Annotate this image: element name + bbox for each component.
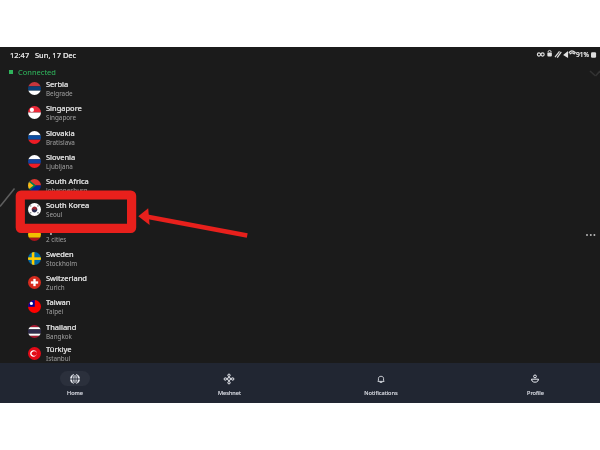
staticText: Singapore bbox=[46, 113, 77, 122]
staticText: Spain bbox=[46, 225, 66, 235]
staticText: 12:47 bbox=[10, 50, 30, 60]
button[interactable]: South Africa bbox=[0, 173, 600, 197]
staticText: Sun, 17 Dec bbox=[35, 50, 77, 60]
staticText: Zurich bbox=[46, 283, 65, 292]
staticText: Taiwan bbox=[46, 297, 71, 307]
button[interactable]: Notifications bbox=[341, 363, 421, 403]
staticText: Ljubljana bbox=[46, 162, 73, 171]
staticText: Sweden bbox=[46, 249, 74, 259]
staticText: Johannesburg bbox=[46, 186, 88, 195]
staticText: Seoul bbox=[46, 210, 63, 219]
staticText: 2 cities bbox=[46, 235, 67, 244]
button[interactable]: Spain bbox=[0, 222, 600, 246]
button[interactable]: South Korea bbox=[0, 197, 600, 222]
button[interactable]: Sweden bbox=[0, 246, 600, 270]
staticText: Profile bbox=[527, 389, 544, 397]
staticText: Slovakia bbox=[46, 128, 75, 138]
staticText: Taipei bbox=[46, 307, 64, 316]
button[interactable]: Thailand bbox=[0, 319, 600, 343]
staticText: 91% bbox=[576, 50, 590, 59]
staticText: Belgrade bbox=[46, 89, 73, 98]
staticText: Istanbul bbox=[46, 354, 71, 363]
staticText: Slovenia bbox=[46, 152, 76, 162]
staticText: Türkiye bbox=[46, 344, 72, 354]
button[interactable]: Taiwan bbox=[0, 294, 600, 319]
staticText: South Korea bbox=[46, 200, 90, 210]
button[interactable]: Serbia bbox=[0, 76, 600, 100]
button[interactable]: Profile bbox=[495, 363, 575, 403]
staticText: Stockholm bbox=[46, 259, 78, 268]
button[interactable]: More options bbox=[580, 228, 596, 242]
staticText: Switzerland bbox=[46, 273, 87, 283]
button[interactable]: Türkiye bbox=[0, 343, 600, 363]
button[interactable]: Slovenia bbox=[0, 149, 600, 173]
staticText: Serbia bbox=[46, 79, 69, 89]
staticText: Singapore bbox=[46, 103, 82, 113]
button[interactable]: Meshnet bbox=[189, 363, 269, 403]
staticText: Bratislava bbox=[46, 138, 75, 147]
staticText: Home bbox=[67, 389, 83, 397]
button[interactable]: Singapore bbox=[0, 100, 600, 125]
button[interactable]: Slovakia bbox=[0, 125, 600, 149]
staticText: Connected bbox=[18, 67, 56, 77]
staticText: Bangkok bbox=[46, 332, 72, 341]
staticText: Meshnet bbox=[218, 389, 241, 397]
staticText: South Africa bbox=[46, 176, 89, 186]
button[interactable]: Switzerland bbox=[0, 270, 600, 294]
staticText: Thailand bbox=[46, 322, 77, 332]
button[interactable]: Home bbox=[35, 363, 115, 403]
staticText: Notifications bbox=[364, 389, 398, 397]
